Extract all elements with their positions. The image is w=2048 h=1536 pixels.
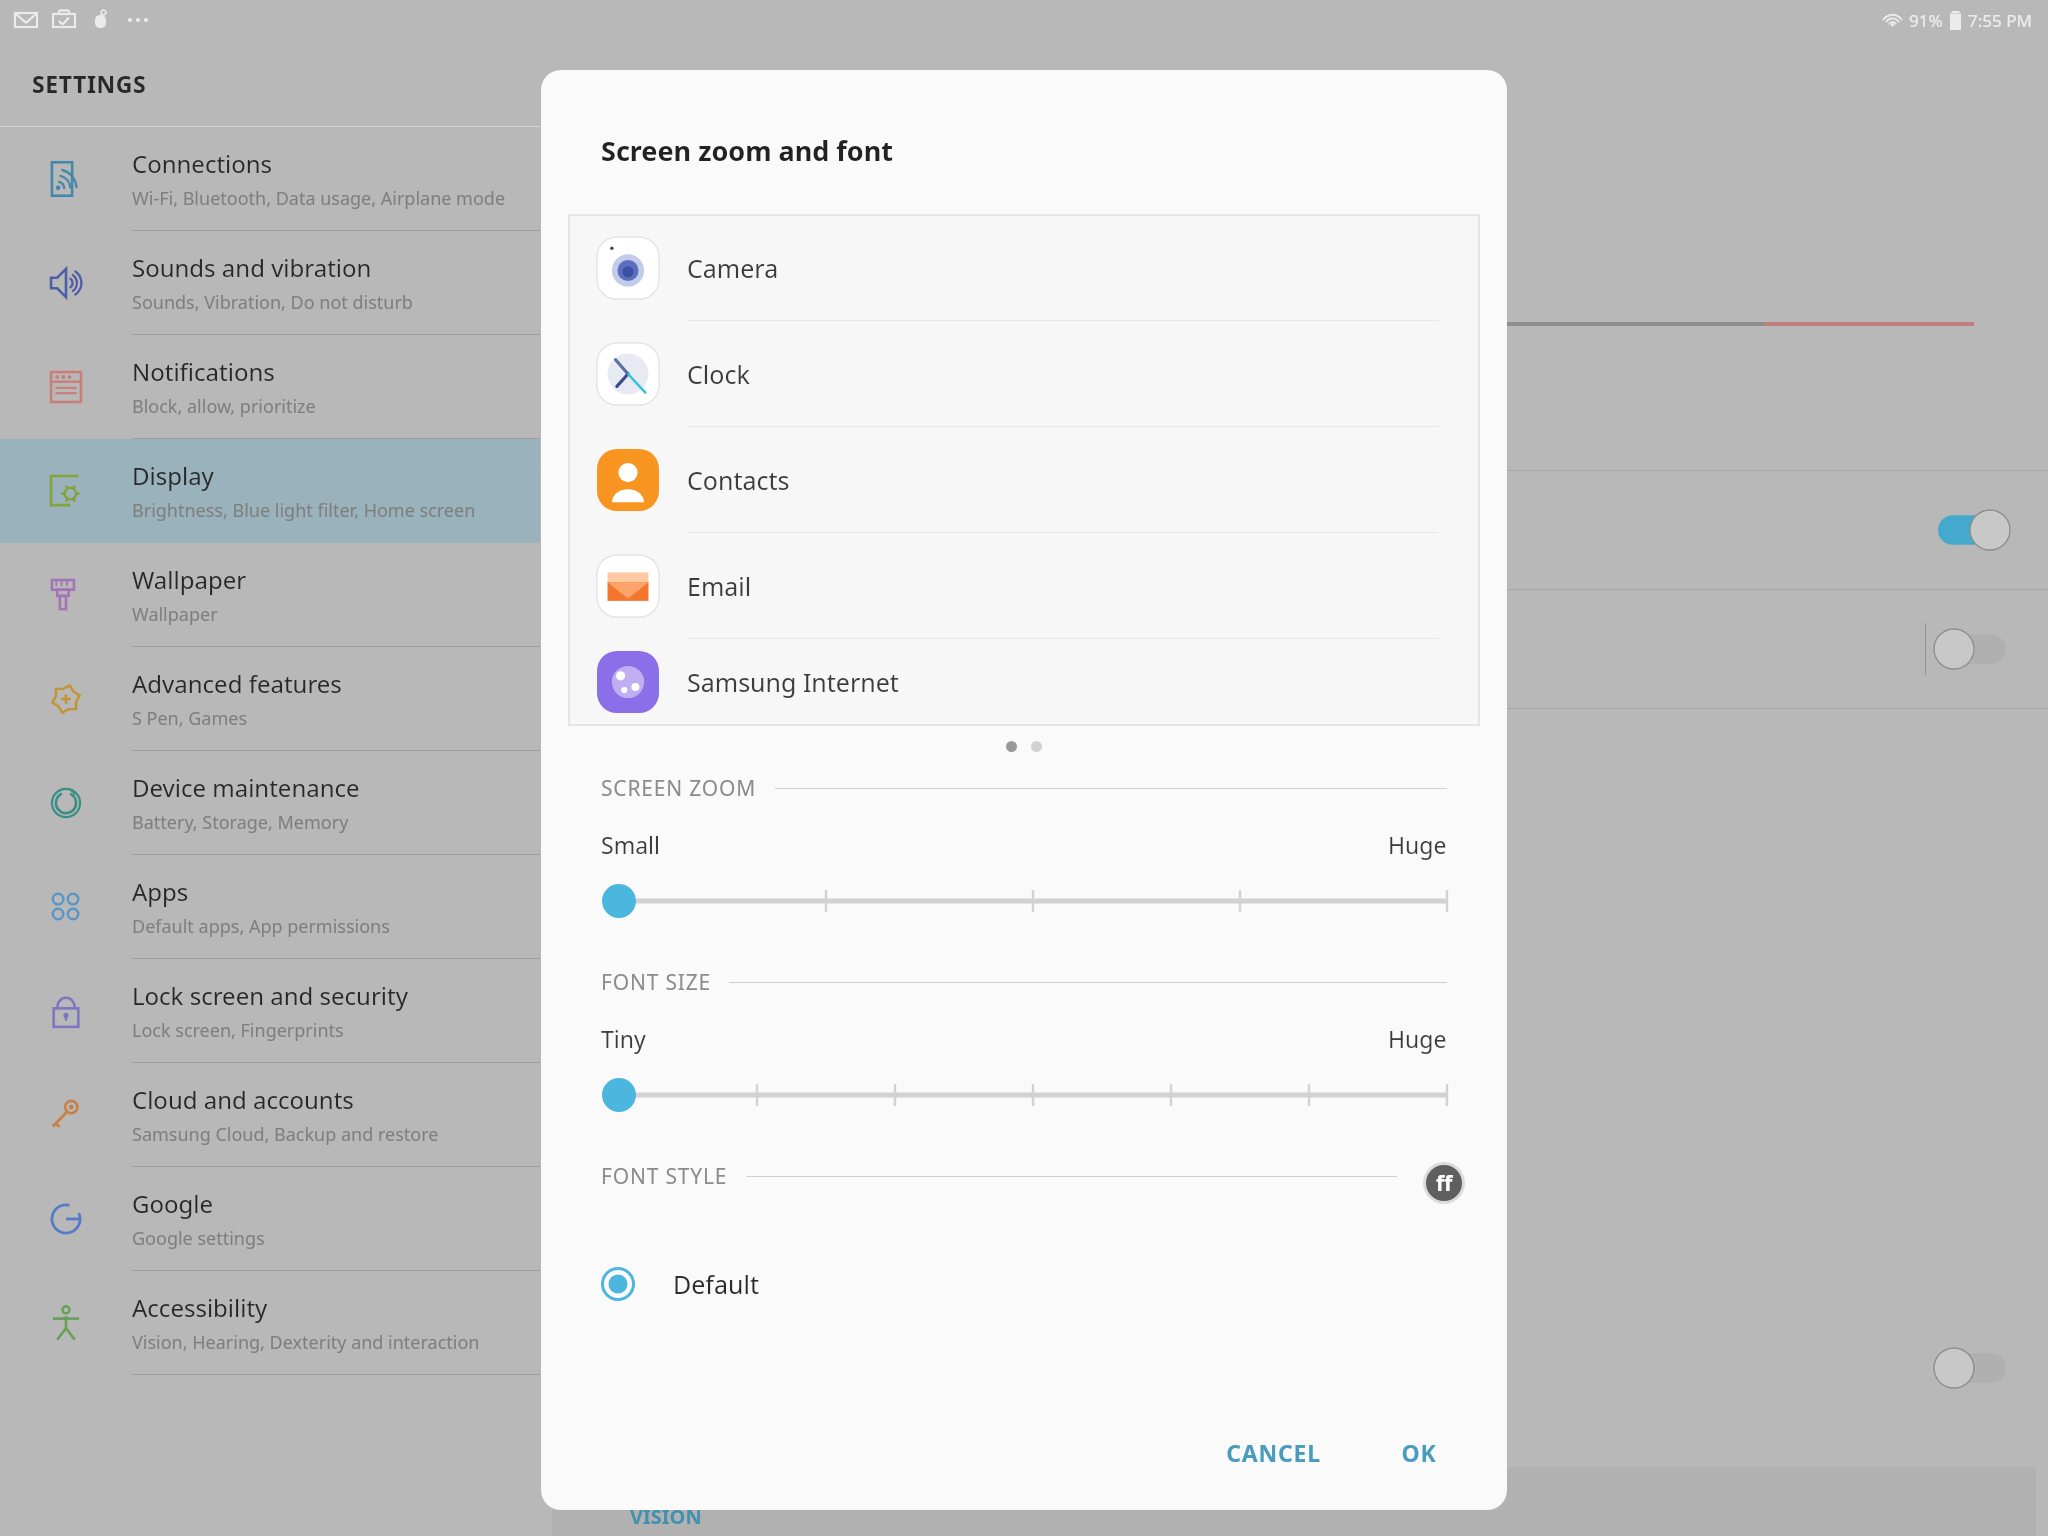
staticText: Accessibility [132, 1291, 268, 1324]
staticText: y the screen. [544, 635, 669, 664]
staticText: Contacts [687, 463, 790, 497]
staticText: Advanced features [132, 667, 342, 700]
button[interactable]: Device maintenance [0, 751, 540, 855]
staticText: Google settings [132, 1226, 265, 1251]
staticText: Connections [132, 147, 273, 180]
staticText: Sounds, Vibration, Do not disturb [132, 290, 413, 315]
button[interactable]: Google [0, 1167, 540, 1271]
button[interactable]: ile your phone is charging. [540, 1309, 2048, 1427]
staticText: Samsung Cloud, Backup and restore [132, 1122, 439, 1147]
staticText: SCREEN ZOOM [601, 774, 757, 803]
staticText: Huge [1388, 829, 1447, 860]
button[interactable]: Accessibility [0, 1271, 540, 1375]
button[interactable] [601, 882, 1447, 920]
staticText: Huge [1388, 1023, 1447, 1054]
button[interactable]: Cloud and accounts [0, 1063, 540, 1167]
button[interactable]: Download fonts [1423, 1162, 1465, 1204]
staticText: Lock screen and security [132, 979, 408, 1012]
staticText: Wallpaper [132, 602, 218, 627]
staticText: CANCEL [1226, 1437, 1321, 1468]
button[interactable]: OK [1379, 1421, 1459, 1484]
button[interactable]: Apps [0, 855, 540, 959]
staticText: VISION [630, 1503, 702, 1530]
button[interactable]: Clock [569, 321, 1479, 427]
staticText: FONT STYLE [601, 1162, 728, 1191]
button[interactable]: Default [541, 1248, 1507, 1320]
staticText: Lock screen, Fingerprints [132, 1018, 344, 1043]
staticText: Wi-Fi, Bluetooth, Data usage, Airplane m… [132, 186, 506, 211]
button[interactable]: Contacts [569, 427, 1479, 533]
staticText: 7:55 PM [1968, 9, 2032, 32]
staticText: Display [132, 459, 214, 492]
button[interactable] [601, 1076, 1447, 1114]
staticText: Device maintenance [132, 771, 360, 804]
button[interactable]: Notifications [0, 335, 540, 439]
button[interactable]: y the screen. [540, 590, 2048, 708]
button[interactable]: g conditions. [540, 471, 2048, 589]
staticText: Default [673, 1267, 759, 1301]
button[interactable]: Advanced features [0, 647, 540, 751]
staticText: Brightness, Blue light filter, Home scre… [132, 498, 476, 523]
button[interactable]: CANCEL [1204, 1421, 1343, 1484]
staticText: Screen zoom and font [601, 132, 893, 169]
staticText: OK [1401, 1437, 1437, 1468]
button[interactable]: Wallpaper [0, 543, 540, 647]
button[interactable]: Display [0, 439, 540, 543]
staticText: Tiny [601, 1023, 646, 1054]
staticText: Vision, Hearing, Dexterity and interacti… [132, 1330, 480, 1355]
staticText: Small [601, 829, 660, 860]
staticText: S Pen, Games [132, 706, 248, 731]
button[interactable]: Connections [0, 127, 540, 231]
staticText: Apps [132, 875, 189, 908]
button[interactable]: Lock screen and security [0, 959, 540, 1063]
staticText: Cloud and accounts [132, 1083, 354, 1116]
button[interactable]: Sounds and vibration [0, 231, 540, 335]
staticText: Block, allow, prioritize [132, 394, 316, 419]
staticText: Default apps, App permissions [132, 914, 390, 939]
staticText: Clock [687, 357, 750, 391]
staticText: Wallpaper [132, 563, 247, 596]
staticText: Samsung Internet [687, 665, 899, 699]
staticText: Battery, Storage, Memory [132, 810, 349, 835]
staticText: Sounds and vibration [132, 251, 372, 284]
staticText: Google [132, 1187, 213, 1220]
staticText: Notifications [132, 355, 275, 388]
button[interactable]: Camera [569, 215, 1479, 321]
button[interactable]: Email [569, 533, 1479, 639]
staticText: Camera [687, 251, 779, 285]
staticText: Email [687, 569, 752, 603]
button[interactable]: Samsung Internet [569, 639, 1479, 725]
staticText: FONT SIZE [601, 968, 711, 997]
staticText: 91% [1909, 9, 1943, 32]
staticText: SETTINGS [32, 68, 147, 99]
staticText: ff [1436, 1169, 1453, 1198]
